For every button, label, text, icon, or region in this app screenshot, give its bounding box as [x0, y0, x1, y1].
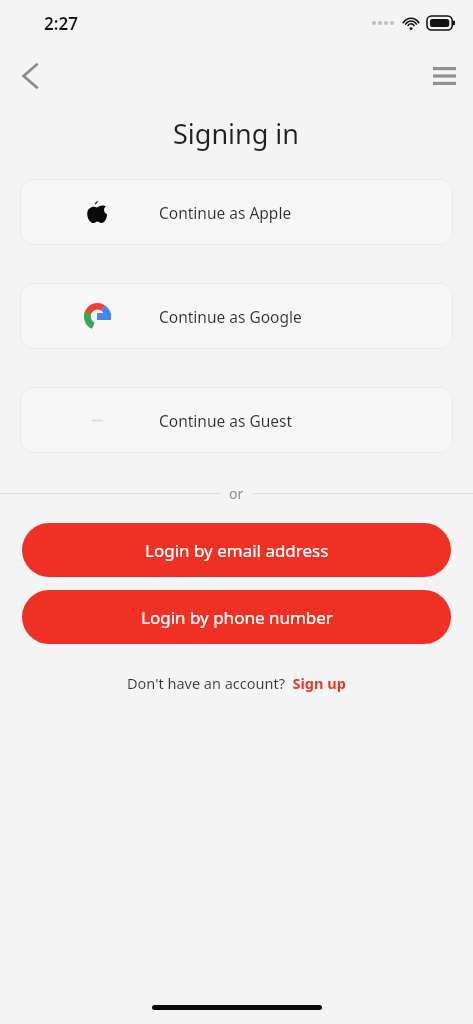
button[interactable]: Continue as Google — [20, 283, 453, 349]
staticText: Don't have an account? Sign up — [127, 673, 346, 693]
staticText: Continue as Guest — [159, 410, 293, 431]
button[interactable]: Back — [8, 54, 52, 98]
staticText: Login by phone number — [141, 606, 333, 629]
button[interactable]: Login by phone number — [22, 590, 451, 644]
staticText: Continue as Google — [159, 306, 302, 327]
staticText: 2:27 — [44, 12, 78, 35]
staticText: Login by email address — [145, 539, 329, 562]
staticText: Continue as Apple — [159, 202, 292, 223]
staticText: Signing in — [173, 115, 300, 152]
button[interactable]: Menu — [422, 54, 466, 98]
button[interactable]: Continue as Apple — [20, 179, 453, 245]
button[interactable]: Login by email address — [22, 523, 451, 577]
button[interactable]: Don't have an account? Sign up — [123, 671, 350, 695]
staticText: or — [229, 484, 244, 503]
button[interactable]: Continue as Guest — [20, 387, 453, 453]
